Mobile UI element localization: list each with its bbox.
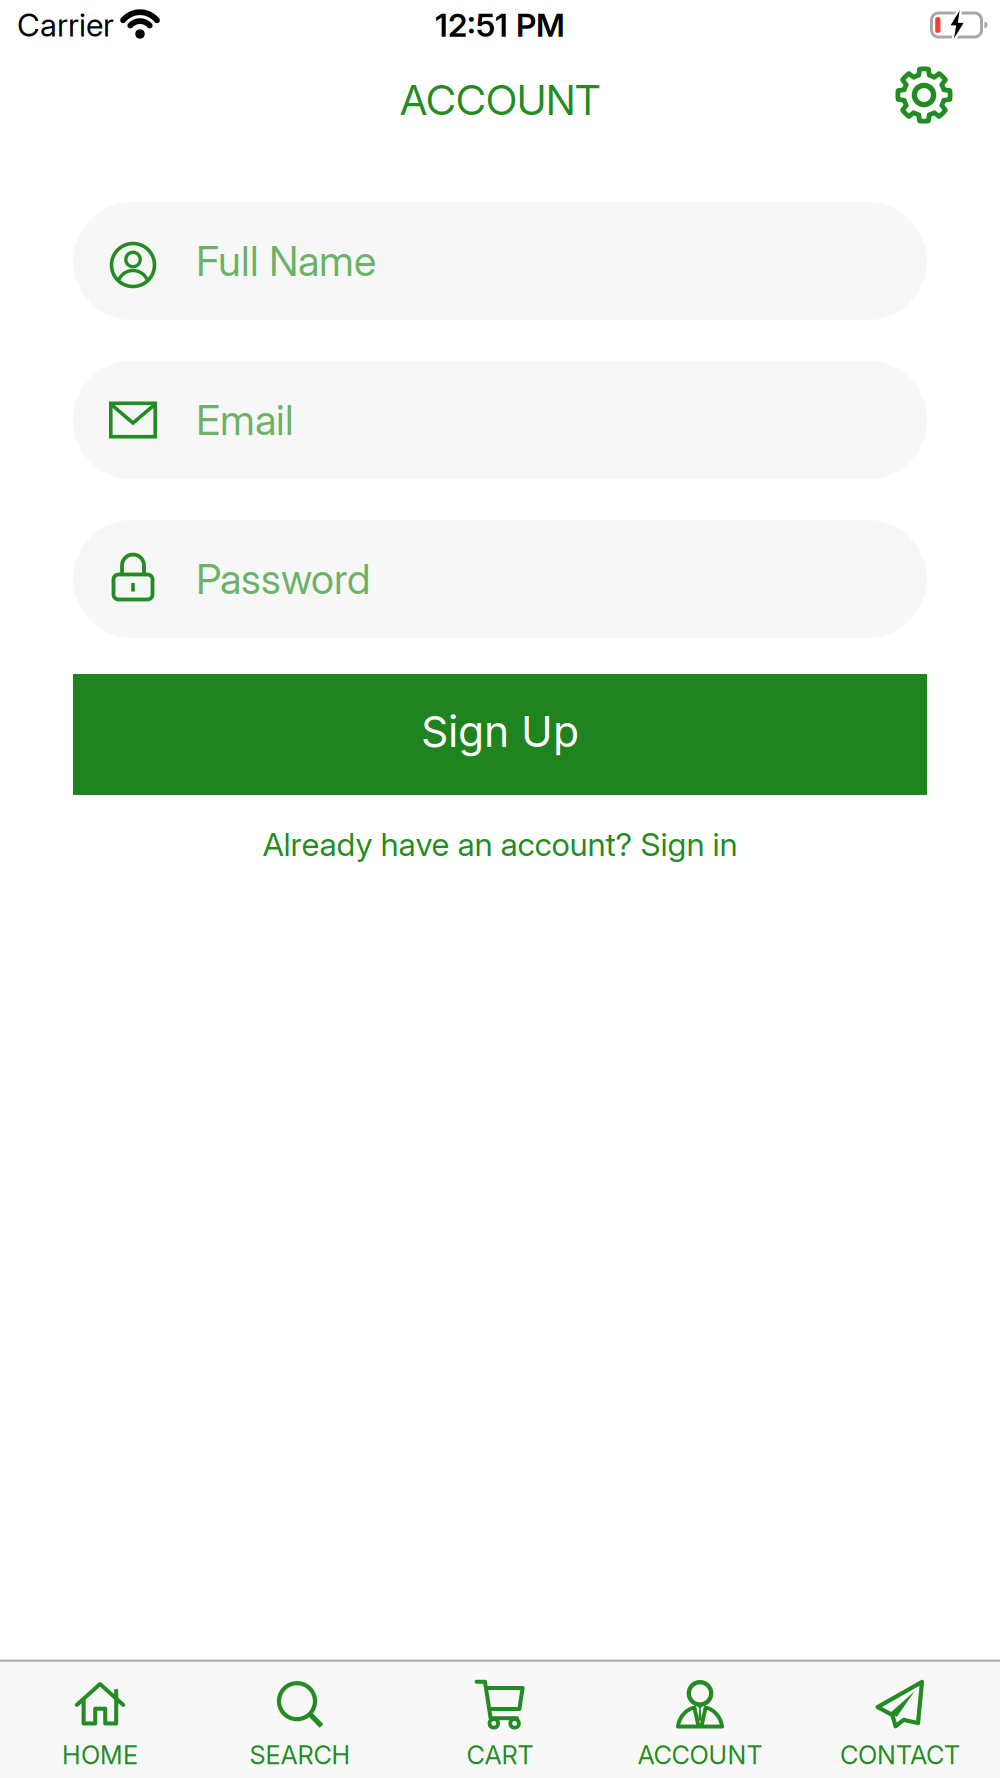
button[interactable]: Email xyxy=(73,361,927,479)
staticText: CART xyxy=(466,1740,533,1770)
staticText: ACCOUNT xyxy=(637,1740,762,1770)
button[interactable]: Sign Up xyxy=(73,674,927,795)
staticText: 12:51 PM xyxy=(435,6,565,44)
button[interactable]: HOME xyxy=(0,1662,200,1770)
button[interactable]: ACCOUNT xyxy=(600,1662,800,1770)
staticText: SEARCH xyxy=(249,1740,350,1770)
staticText: Carrier xyxy=(17,6,114,44)
button[interactable]: SEARCH xyxy=(200,1662,400,1770)
staticText: Already have an account? Sign in xyxy=(262,825,737,864)
button[interactable]: CART xyxy=(400,1662,600,1770)
button[interactable]: CONTACT xyxy=(800,1662,1000,1770)
staticText: Password xyxy=(196,554,370,604)
button[interactable]: Password xyxy=(73,520,927,638)
button[interactable]: Settings xyxy=(896,67,952,123)
button[interactable]: Already have an account? Sign in xyxy=(262,825,737,864)
staticText: Email xyxy=(196,395,294,445)
staticText: CONTACT xyxy=(840,1740,960,1770)
staticText: Full Name xyxy=(196,236,376,286)
staticText: ACCOUNT xyxy=(400,75,600,125)
staticText: HOME xyxy=(62,1740,138,1770)
staticText: Sign Up xyxy=(421,706,579,757)
button[interactable]: Full Name xyxy=(73,202,927,320)
